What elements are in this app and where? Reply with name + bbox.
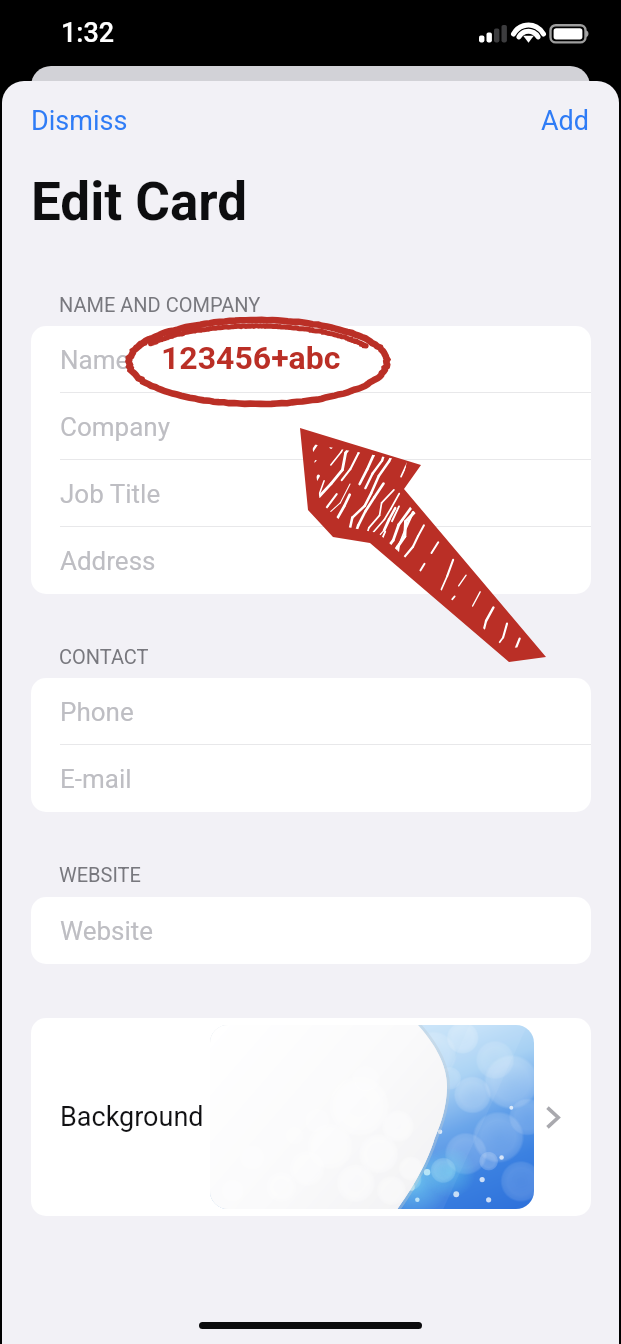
staticText: Edit Card [31, 171, 248, 233]
other: Open background picker [547, 1107, 560, 1128]
staticText: E-mail [60, 764, 132, 794]
staticText: Company [60, 412, 170, 442]
button[interactable]: Phone [31, 678, 591, 745]
staticText: Dismiss [31, 105, 128, 137]
staticText: CONTACT [59, 645, 149, 668]
staticText: Address [60, 546, 156, 576]
staticText: Name [60, 345, 130, 375]
staticText: NAME AND COMPANY [59, 293, 261, 316]
button[interactable]: Address [31, 527, 591, 594]
button[interactable]: Name [31, 326, 591, 393]
staticText: WEBSITE [59, 863, 141, 886]
staticText: Phone [60, 697, 134, 727]
staticText: Job Title [60, 479, 161, 509]
button[interactable]: Background [31, 1018, 591, 1216]
button[interactable]: E-mail [31, 745, 591, 812]
staticText: 1:32 [61, 17, 115, 49]
staticText: Add [541, 105, 590, 137]
button[interactable]: Add [524, 95, 607, 147]
staticText: Website [60, 916, 154, 946]
button[interactable]: Company [31, 393, 591, 460]
staticText: Background [60, 1101, 204, 1133]
staticText: 123456+abc [161, 339, 341, 377]
button[interactable]: Job Title [31, 460, 591, 527]
button[interactable]: Website [31, 897, 591, 964]
button[interactable]: Dismiss [14, 95, 145, 147]
